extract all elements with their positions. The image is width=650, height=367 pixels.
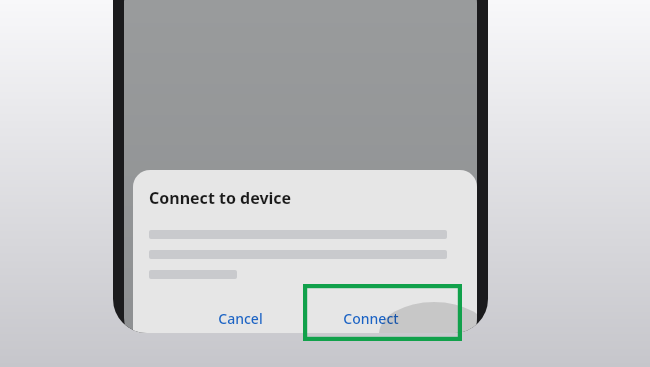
staticText: Connect to device bbox=[149, 187, 292, 209]
staticText: Cancel bbox=[218, 309, 263, 328]
staticText: Connect bbox=[343, 309, 399, 328]
button[interactable]: Cancel bbox=[197, 296, 283, 333]
other: Highlight around Connect button bbox=[303, 284, 462, 341]
button[interactable]: Connect bbox=[325, 296, 417, 333]
